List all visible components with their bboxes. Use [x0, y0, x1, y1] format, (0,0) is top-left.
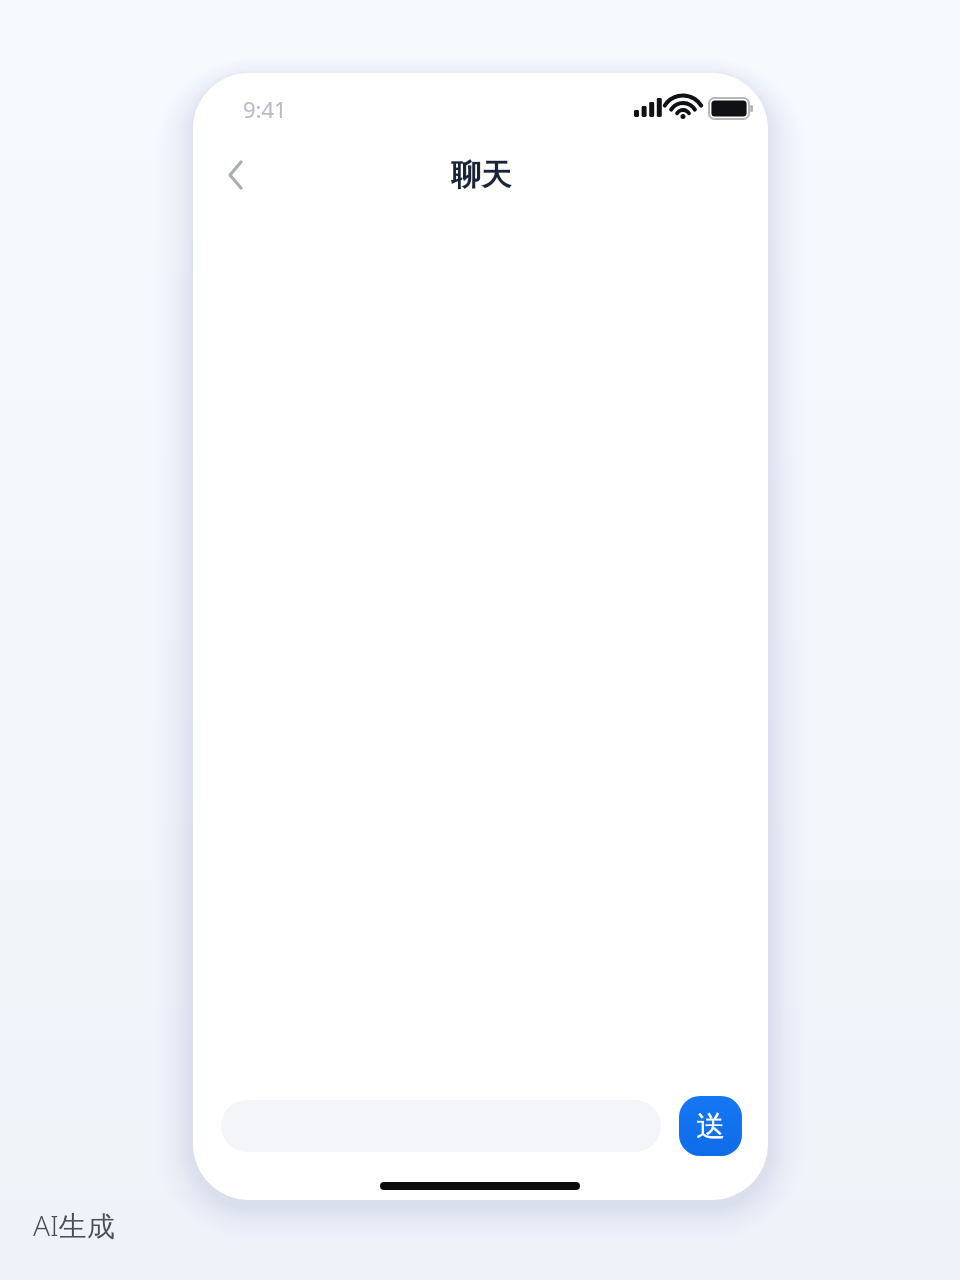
button[interactable]: Back — [207, 147, 265, 203]
button[interactable]: Send — [679, 1096, 742, 1156]
staticText: 9:41 — [243, 94, 287, 124]
staticText: 送 — [696, 1108, 725, 1145]
staticText: 聊天 — [451, 156, 511, 194]
staticText: AI生成 — [33, 1206, 115, 1244]
